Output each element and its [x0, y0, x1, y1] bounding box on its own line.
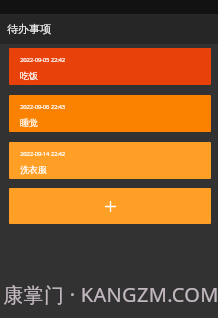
staticText: 2022-09-05 22:42 [20, 56, 66, 64]
staticText: 康掌门 · KANGZM.COM [3, 281, 218, 308]
button[interactable]: 2022-09-14 22:42 [9, 142, 211, 179]
staticText: 吃饭 [20, 70, 38, 81]
staticText: 2022-09-06 22:43 [20, 103, 66, 111]
staticText: 待办事项 [7, 22, 51, 36]
staticText: 睡觉 [20, 117, 38, 128]
staticText: 2022-09-14 22:42 [20, 150, 66, 158]
button[interactable]: Add [9, 188, 211, 224]
button[interactable]: 2022-09-06 22:43 [9, 95, 211, 132]
button[interactable]: 2022-09-05 22:42 [9, 48, 211, 85]
staticText: 洗衣服 [20, 164, 47, 175]
